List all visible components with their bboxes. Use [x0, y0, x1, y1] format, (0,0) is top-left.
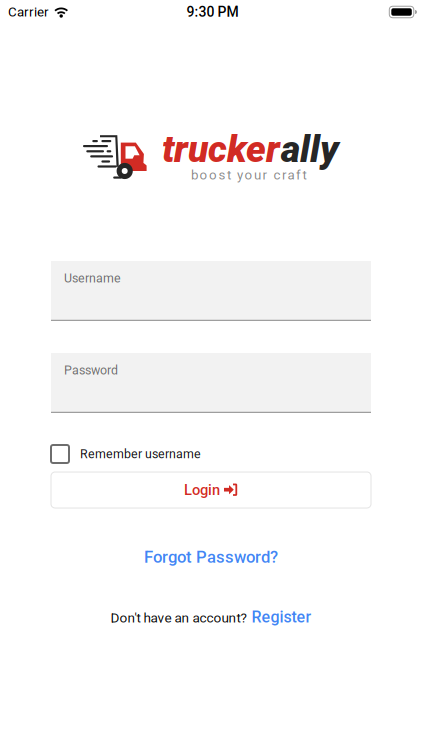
- staticText: Don't have an account?: [110, 610, 246, 626]
- staticText: Forgot Password?: [144, 547, 278, 567]
- staticText: 9:30 PM: [186, 4, 238, 20]
- staticText: Remember username: [80, 447, 201, 461]
- button[interactable]: Login: [51, 472, 371, 508]
- staticText: boost your craft: [191, 167, 306, 183]
- staticText: Username: [64, 271, 121, 285]
- button[interactable]: Remember username: [51, 445, 371, 463]
- staticText: Carrier: [8, 4, 49, 20]
- staticText: Login: [184, 481, 220, 499]
- button[interactable]: Forgot Password?: [51, 546, 371, 568]
- staticText: trucker: [162, 127, 280, 171]
- staticText: Register: [251, 608, 311, 626]
- staticText: Password: [64, 363, 118, 377]
- button[interactable]: Register: [251, 608, 311, 626]
- staticText: ally: [281, 127, 339, 171]
